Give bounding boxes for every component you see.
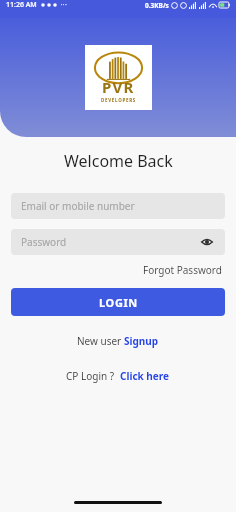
staticText: ⋯ bbox=[60, 1, 67, 9]
staticText: CP Login ? bbox=[66, 369, 120, 383]
button[interactable]: Email or mobile number bbox=[11, 193, 225, 219]
button[interactable]: LOGIN bbox=[11, 288, 225, 316]
staticText: 11:26 AM bbox=[6, 0, 37, 10]
staticText: Forgot Password bbox=[143, 263, 222, 277]
staticText: 0.3KB/s bbox=[145, 1, 169, 10]
staticText: Signup bbox=[124, 334, 159, 348]
staticText: Password bbox=[21, 235, 67, 249]
button[interactable]: Password bbox=[11, 229, 225, 255]
button[interactable]: Forgot Password bbox=[141, 261, 224, 279]
staticText: Email or mobile number bbox=[21, 199, 135, 213]
staticText: DEVELOPERS bbox=[101, 97, 136, 103]
button[interactable]: Show password bbox=[199, 234, 215, 250]
staticText: LOGIN bbox=[99, 295, 138, 310]
staticText: PVR bbox=[102, 77, 135, 97]
staticText: New user bbox=[77, 334, 124, 348]
staticText: Click here bbox=[120, 369, 170, 383]
staticText: Welcome Back bbox=[64, 150, 173, 172]
button[interactable]: CP Login ? bbox=[60, 366, 176, 386]
button[interactable]: New user bbox=[71, 331, 165, 351]
